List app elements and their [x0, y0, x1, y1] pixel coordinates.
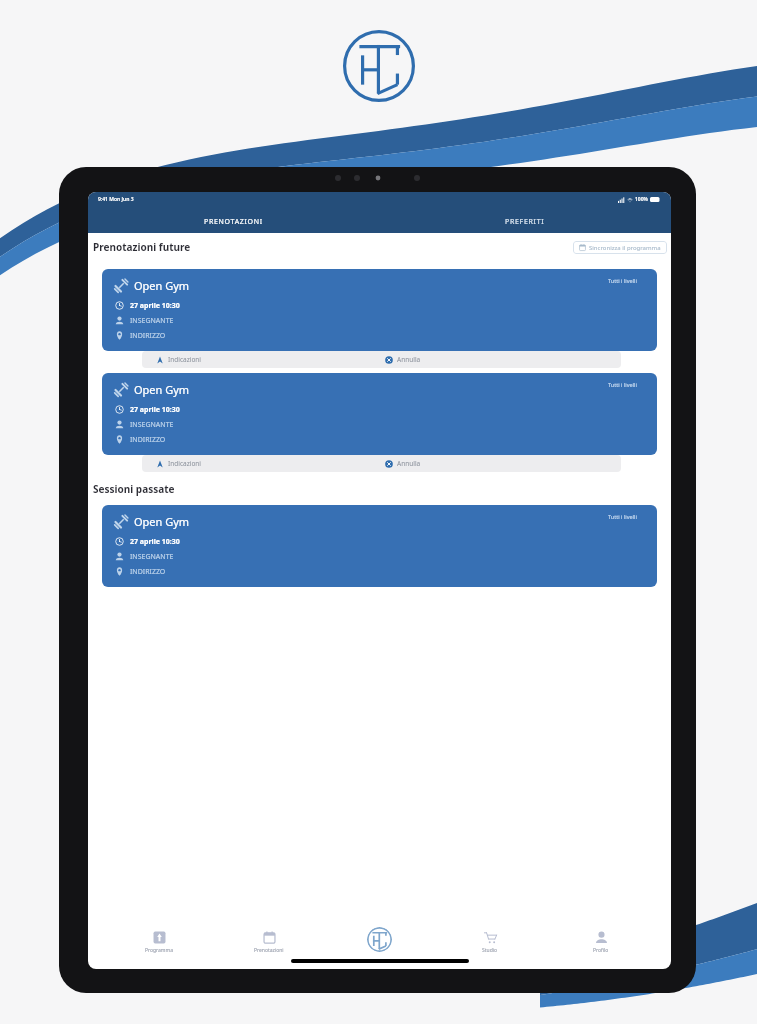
- button[interactable]: Open Gym: [102, 373, 657, 455]
- staticText: 100%: [635, 196, 648, 203]
- button[interactable]: Open Gym: [102, 269, 657, 351]
- staticText: Tutti i livelli: [608, 381, 637, 388]
- button[interactable]: Programma: [119, 931, 199, 954]
- staticText: Prenotazioni future: [93, 240, 191, 254]
- staticText: 9:41 Mon Jun 3: [98, 196, 134, 203]
- staticText: PRENOTAZIONI: [204, 217, 263, 227]
- button[interactable]: Indicazioni: [142, 351, 381, 368]
- button[interactable]: Prenotazioni: [229, 931, 309, 954]
- button[interactable]: Annulla: [381, 455, 621, 472]
- staticText: INDIRIZZO: [130, 331, 166, 341]
- staticText: Open Gym: [134, 382, 190, 397]
- staticText: Programma: [145, 947, 174, 954]
- staticText: 27 aprile 10:30: [130, 405, 180, 415]
- staticText: INDIRIZZO: [130, 567, 166, 577]
- staticText: Sincronizza il programma: [589, 244, 661, 252]
- button[interactable]: PREFERITI: [379, 211, 671, 233]
- staticText: Sessioni passate: [93, 482, 175, 496]
- staticText: INSEGNANTE: [130, 316, 174, 326]
- button[interactable]: Studio: [450, 931, 530, 954]
- button[interactable]: Annulla: [381, 351, 621, 368]
- staticText: Annulla: [397, 355, 421, 364]
- staticText: INSEGNANTE: [130, 420, 174, 430]
- button[interactable]: Open Gym: [102, 505, 657, 587]
- staticText: Indicazioni: [168, 459, 202, 468]
- staticText: Prenotazioni: [254, 947, 284, 954]
- staticText: PREFERITI: [505, 217, 545, 227]
- button[interactable]: PRENOTAZIONI: [88, 211, 379, 233]
- staticText: Open Gym: [134, 278, 190, 293]
- staticText: INDIRIZZO: [130, 435, 166, 445]
- staticText: Tutti i livelli: [608, 277, 637, 284]
- staticText: 27 aprile 10:30: [130, 537, 180, 547]
- button[interactable]: Indicazioni: [142, 455, 381, 472]
- staticText: Tutti i livelli: [608, 513, 637, 520]
- staticText: Annulla: [397, 459, 421, 468]
- staticText: Profilo: [593, 947, 609, 954]
- button[interactable]: Sincronizza il programma: [573, 241, 667, 254]
- staticText: INSEGNANTE: [130, 552, 174, 562]
- staticText: Studio: [482, 947, 498, 954]
- button[interactable]: Profilo: [561, 931, 641, 954]
- staticText: Open Gym: [134, 514, 190, 529]
- staticText: 27 aprile 10:30: [130, 301, 180, 311]
- staticText: Indicazioni: [168, 355, 202, 364]
- button[interactable]: Home: [367, 927, 392, 952]
